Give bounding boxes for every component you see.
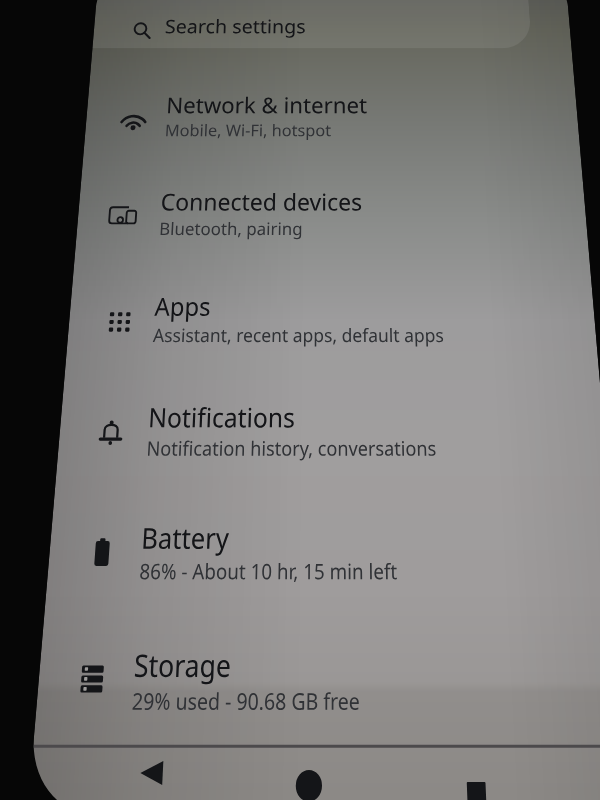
staticText: Notifications (147, 398, 295, 435)
other: Storage (80, 666, 104, 692)
other: Apps (109, 312, 131, 332)
staticText: Bluetooth, pairing (159, 217, 304, 240)
staticText: Search settings (164, 14, 307, 39)
button[interactable]: Recent apps (467, 782, 486, 800)
staticText: Apps (154, 289, 212, 322)
button[interactable] (83, 63, 581, 156)
other: Connected devices (108, 206, 138, 224)
button[interactable] (92, 0, 532, 48)
other: Battery (94, 538, 110, 566)
other: Network and internet (120, 112, 147, 130)
staticText: Network & internet (166, 90, 367, 119)
staticText: Connected devices (160, 185, 362, 217)
button[interactable] (75, 156, 589, 257)
staticText: Battery (140, 518, 230, 557)
button[interactable]: Home (296, 770, 322, 800)
button[interactable] (65, 258, 598, 365)
staticText: Notification history, conversations (146, 435, 437, 462)
button[interactable] (34, 605, 600, 739)
staticText: 29% used - 90.68 GB free (131, 685, 360, 717)
staticText: 86% - About 10 hr, 15 min left (139, 557, 398, 586)
staticText: Assistant, recent apps, default apps (152, 322, 445, 348)
button[interactable]: Back (140, 761, 163, 785)
button[interactable] (45, 482, 600, 606)
staticText: Mobile, Wi-Fi, hotspot (164, 119, 332, 141)
staticText: Storage (133, 643, 232, 685)
other: Search (133, 22, 151, 39)
button[interactable] (56, 365, 600, 481)
other: Notifications (99, 420, 122, 444)
